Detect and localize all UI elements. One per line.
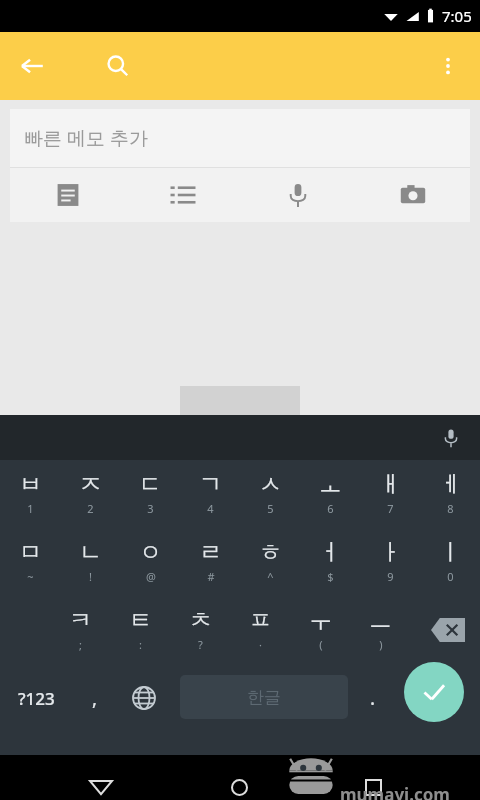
staticText: @ — [146, 569, 156, 584]
staticText: 6 — [327, 501, 334, 516]
button[interactable]: Back — [88, 774, 114, 800]
staticText: . — [370, 685, 376, 711]
staticText: ㅡ — [369, 606, 392, 635]
staticText: ( — [319, 637, 323, 652]
button[interactable]: ㅗ — [300, 460, 360, 528]
staticText: 7 — [387, 501, 394, 516]
button[interactable]: Backspace — [415, 596, 480, 664]
button[interactable]: ㅂ — [0, 460, 60, 528]
staticText: ! — [89, 569, 92, 584]
button[interactable]: Search — [102, 50, 134, 82]
staticText: ㅔ — [439, 470, 462, 499]
staticText: ^ — [267, 569, 274, 584]
staticText: 0 — [447, 569, 454, 584]
button[interactable]: ㄹ — [180, 528, 240, 596]
staticText: $ — [327, 569, 334, 584]
staticText: ~ — [27, 569, 34, 584]
button[interactable]: ㅍ — [230, 596, 290, 664]
button[interactable]: ㅐ — [360, 460, 420, 528]
button[interactable]: 한글 — [180, 675, 348, 719]
button[interactable]: ㅣ — [420, 528, 480, 596]
button[interactable]: ㅔ — [420, 460, 480, 528]
staticText: ㅈ — [79, 470, 102, 499]
staticText: ㅁ — [19, 538, 42, 567]
button[interactable]: Checklist — [125, 168, 240, 222]
staticText: 2 — [87, 501, 94, 516]
staticText: 8 — [447, 501, 454, 516]
staticText: 빠른 메모 추가 — [24, 125, 148, 151]
staticText: 3 — [147, 501, 154, 516]
button[interactable]: Change language — [118, 664, 170, 732]
button[interactable]: Enter — [404, 662, 464, 722]
button[interactable]: ㄱ — [180, 460, 240, 528]
button[interactable]: ㅋ — [50, 596, 110, 664]
button[interactable]: ㅓ — [300, 528, 360, 596]
staticText: ㅍ — [249, 606, 272, 635]
staticText: 5 — [267, 501, 274, 516]
staticText: ? — [198, 637, 203, 652]
button[interactable]: More options — [432, 50, 464, 82]
staticText: 한글 — [247, 687, 281, 708]
button[interactable]: ㄴ — [60, 528, 120, 596]
button[interactable]: Voice note — [240, 168, 355, 222]
button[interactable]: ㅁ — [0, 528, 60, 596]
staticText: 9 — [387, 569, 394, 584]
button[interactable]: 빠른 메모 추가 — [10, 109, 470, 167]
staticText: ㄴ — [79, 538, 102, 567]
staticText: ㅏ — [379, 538, 402, 567]
staticText: ㅎ — [259, 538, 282, 567]
button[interactable]: ㅜ — [290, 596, 350, 664]
button[interactable]: ㄷ — [120, 460, 180, 528]
staticText: ㅐ — [379, 470, 402, 499]
staticText: ㄹ — [199, 538, 222, 567]
staticText: : — [139, 637, 142, 652]
staticText: ㅊ — [189, 606, 212, 635]
staticText: ; — [79, 637, 82, 652]
button[interactable]: ㅈ — [60, 460, 120, 528]
button[interactable]: Voice input — [436, 423, 466, 453]
staticText: # — [207, 569, 215, 584]
button[interactable]: , — [72, 664, 118, 732]
button[interactable]: Photo note — [355, 168, 470, 222]
staticText: 7:05 — [442, 6, 472, 26]
staticText: ?123 — [18, 687, 55, 710]
staticText: ㅌ — [129, 606, 152, 635]
button[interactable]: ?123 — [0, 664, 72, 732]
button[interactable]: ㅌ — [110, 596, 170, 664]
staticText: ㄱ — [199, 470, 222, 499]
staticText: ㅇ — [139, 538, 162, 567]
button[interactable]: Back — [16, 50, 48, 82]
staticText: ㅜ — [309, 606, 332, 635]
staticText: ㅣ — [439, 538, 462, 567]
staticText: ) — [379, 637, 383, 652]
button[interactable]: ㅎ — [240, 528, 300, 596]
button[interactable]: ㅇ — [120, 528, 180, 596]
staticText: , — [92, 685, 98, 711]
button[interactable]: ㅅ — [240, 460, 300, 528]
staticText: ㅅ — [259, 470, 282, 499]
staticText: 1 — [27, 501, 34, 516]
staticText: mumayi.com — [340, 783, 450, 800]
staticText: 4 — [207, 501, 214, 516]
staticText: ㅓ — [319, 538, 342, 567]
button[interactable]: ㅊ — [170, 596, 230, 664]
staticText: ㅋ — [69, 606, 92, 635]
staticText: ㅗ — [319, 470, 342, 499]
button[interactable]: ㅡ — [350, 596, 410, 664]
staticText: ㅂ — [19, 470, 42, 499]
button[interactable]: Home — [226, 774, 252, 800]
staticText: ㄷ — [139, 470, 162, 499]
staticText: · — [259, 637, 262, 652]
button[interactable]: . — [352, 664, 394, 732]
button[interactable]: ㅏ — [360, 528, 420, 596]
button[interactable]: Text note — [10, 168, 125, 222]
button[interactable]: Recent apps — [360, 774, 386, 800]
